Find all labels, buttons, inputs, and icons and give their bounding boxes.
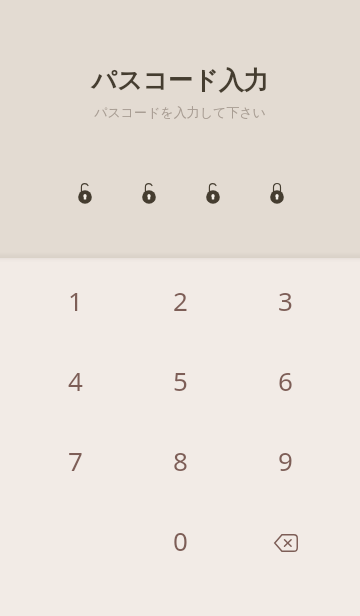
staticText: 9: [278, 443, 293, 478]
staticText: パスコード入力: [91, 65, 269, 96]
staticText: 0: [173, 523, 188, 558]
button[interactable]: 8: [128, 420, 233, 500]
button[interactable]: 3: [233, 260, 338, 340]
staticText: 8: [173, 443, 188, 478]
other: Passcode progress: [1, 180, 360, 212]
staticText: 5: [173, 363, 188, 398]
staticText: 2: [173, 283, 188, 318]
button[interactable]: 5: [128, 340, 233, 420]
button[interactable]: Delete: [233, 500, 338, 580]
staticText: 7: [68, 443, 83, 478]
staticText: 1: [68, 283, 83, 318]
button[interactable]: 4: [23, 340, 128, 420]
button[interactable]: 1: [23, 260, 128, 340]
staticText: パスコードを入力して下さい: [94, 104, 266, 120]
other: Delete: [274, 534, 298, 552]
staticText: 6: [278, 363, 293, 398]
staticText: 4: [68, 363, 83, 398]
button[interactable]: 9: [233, 420, 338, 500]
button[interactable]: 0: [128, 500, 233, 580]
button[interactable]: 6: [233, 340, 338, 420]
staticText: 3: [278, 283, 293, 318]
button[interactable]: 2: [128, 260, 233, 340]
button[interactable]: 7: [23, 420, 128, 500]
